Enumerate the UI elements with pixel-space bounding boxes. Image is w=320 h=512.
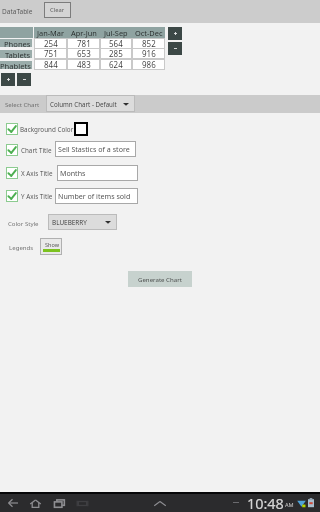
staticText: 844	[44, 59, 58, 70]
button[interactable]: Toggle option	[6, 167, 18, 179]
staticText: 751	[44, 48, 58, 59]
button[interactable]: Number of items sold	[55, 188, 138, 204]
staticText: BLUEBERRY	[52, 218, 87, 227]
button[interactable]: Column Chart - Default	[46, 95, 135, 112]
staticText: Jul-Sep	[104, 28, 128, 38]
button[interactable]: Sell Stastics of a store	[55, 141, 136, 157]
staticText: AM	[285, 501, 294, 509]
staticText: Oct-Dec	[135, 28, 163, 38]
button[interactable]: Toggle option	[6, 144, 18, 156]
button[interactable]: Generate Chart	[128, 271, 192, 287]
staticText: Number of items sold	[58, 191, 131, 201]
staticText: Sell Stastics of a store	[58, 144, 130, 154]
staticText: 916	[142, 48, 156, 59]
staticText: Column Chart - Default	[50, 100, 117, 108]
staticText: DataTable	[2, 7, 33, 16]
staticText: Show	[45, 241, 59, 248]
button[interactable]: Months	[57, 165, 138, 181]
button[interactable]: Add column	[168, 27, 182, 40]
staticText: 653	[77, 48, 91, 59]
staticText: 986	[142, 59, 156, 70]
button[interactable]: Show navigation	[150, 494, 170, 512]
staticText: Jan-Mar	[37, 28, 65, 38]
staticText: Apr-Jun	[71, 28, 97, 38]
button[interactable]: Add row	[1, 73, 15, 86]
staticText: Phablets	[0, 61, 31, 69]
staticText: Clear	[50, 6, 65, 14]
staticText: Color Style	[8, 219, 39, 227]
staticText: 624	[109, 59, 123, 70]
staticText: 483	[77, 59, 91, 70]
staticText: Phones	[4, 39, 31, 47]
button[interactable]: Toggle option	[6, 190, 18, 202]
staticText: 285	[109, 48, 123, 59]
staticText: Background Color	[20, 125, 74, 134]
staticText: Y Axis Title	[21, 192, 53, 201]
staticText: 254	[44, 38, 58, 49]
staticText: 781	[77, 38, 91, 49]
staticText: 10:48	[247, 494, 284, 512]
button[interactable]: Pick background colour	[74, 122, 88, 136]
button[interactable]: Recent apps	[49, 494, 69, 512]
button[interactable]: Home	[25, 494, 45, 512]
button[interactable]: BLUEBERRY	[48, 214, 117, 230]
button[interactable]: Screenshot	[72, 494, 92, 512]
staticText: Generate Chart	[138, 275, 182, 283]
button[interactable]: Remove row	[17, 73, 31, 86]
staticText: 564	[109, 38, 123, 49]
button[interactable]: Remove column	[168, 42, 182, 55]
staticText: Months	[60, 168, 86, 178]
button[interactable]: Clear	[44, 2, 71, 18]
staticText: 852	[142, 38, 156, 49]
button[interactable]: Back	[3, 494, 23, 512]
staticText: Legends	[9, 243, 34, 251]
staticText: Chart Title	[21, 146, 52, 155]
button[interactable]: Show	[40, 238, 62, 255]
staticText: Select Chart	[5, 100, 40, 108]
staticText: X Axis Title	[21, 169, 53, 178]
staticText: Tablets	[5, 50, 31, 58]
button[interactable]: Toggle option	[6, 123, 18, 135]
